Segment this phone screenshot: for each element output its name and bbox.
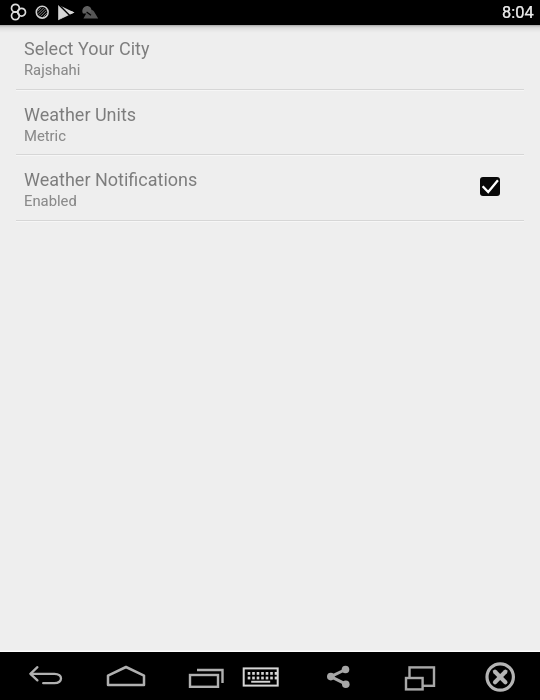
staticText: 8:04	[502, 3, 534, 22]
staticText: Select Your City	[24, 38, 150, 59]
button[interactable]: Select Your City	[0, 25, 540, 89]
button[interactable]: Back	[24, 652, 68, 700]
staticText: Metric	[24, 127, 66, 144]
button[interactable]: Share	[316, 652, 360, 700]
staticText: Weather Units	[24, 104, 137, 125]
button[interactable]: Keyboard	[241, 652, 281, 700]
staticText: Rajshahi	[24, 61, 81, 78]
button[interactable]: Weather Units	[0, 91, 540, 154]
staticText: Enabled	[24, 192, 77, 209]
button[interactable]: Home	[104, 652, 148, 700]
button[interactable]: Close	[478, 652, 522, 700]
staticText: Weather Notifications	[24, 169, 198, 190]
button[interactable]: Recent apps	[186, 652, 226, 700]
button[interactable]: Weather Notifications	[0, 156, 540, 220]
button[interactable]: Multi window	[398, 652, 442, 700]
